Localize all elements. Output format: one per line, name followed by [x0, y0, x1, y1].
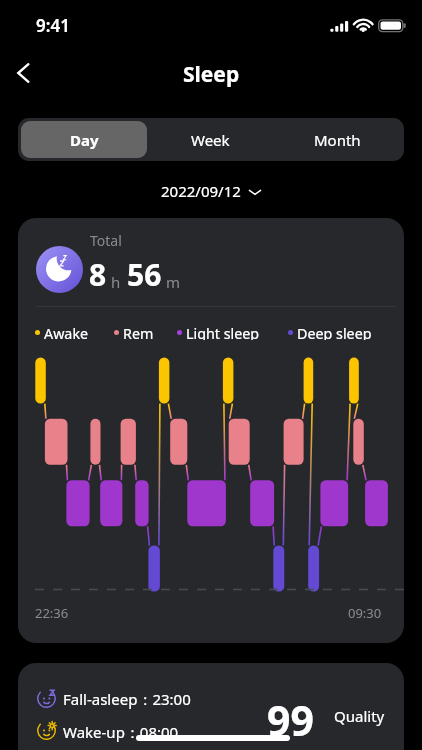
staticText: 56 [127, 254, 162, 295]
button[interactable]: 2022/09/12 [0, 177, 422, 205]
button[interactable]: Month [274, 121, 401, 158]
staticText: 22:36 [35, 604, 69, 622]
staticText: 99 [267, 692, 314, 748]
staticText: m [166, 272, 181, 292]
staticText: Total [90, 231, 122, 250]
staticText: 8 [89, 254, 107, 295]
staticText: Light sleep [186, 324, 260, 340]
staticText: Fall-asleep：23:00 [63, 689, 191, 709]
staticText: Sleep [183, 60, 240, 89]
staticText: 2022/09/12 [161, 181, 241, 201]
staticText: Deep sleep [297, 324, 372, 340]
staticText: 09:30 [348, 604, 382, 622]
staticText: Wake-up：08:00 [63, 722, 179, 742]
staticText: Awake [44, 324, 89, 340]
staticText: Rem [123, 324, 154, 340]
staticText: h [111, 272, 121, 292]
button[interactable]: Day [21, 121, 147, 158]
staticText: Month [314, 130, 361, 150]
staticText: Quality [334, 706, 385, 726]
staticText: 9:41 [36, 14, 70, 37]
staticText: Day [70, 130, 99, 150]
button[interactable]: Week [147, 121, 274, 158]
staticText: Week [191, 130, 230, 150]
button[interactable]: Back [5, 54, 43, 92]
